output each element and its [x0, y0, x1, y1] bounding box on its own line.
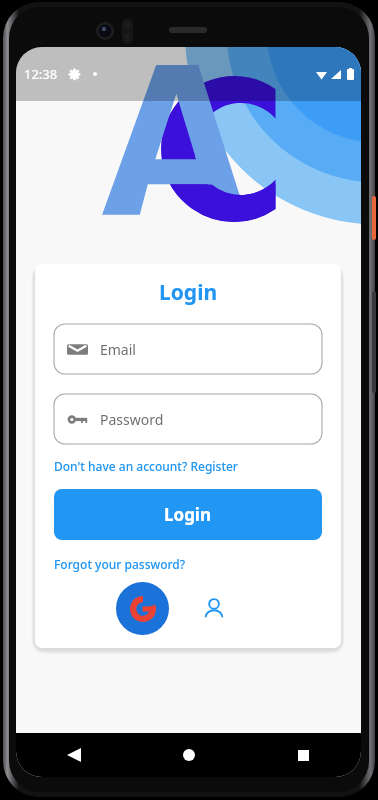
- button[interactable]: Home: [131, 733, 246, 777]
- staticText: Login: [159, 278, 218, 307]
- staticText: Login: [164, 503, 212, 526]
- button[interactable]: Email: [54, 324, 322, 374]
- button[interactable]: Recents: [246, 733, 361, 777]
- button[interactable]: Continue as guest: [197, 592, 231, 626]
- button[interactable]: Password: [54, 394, 322, 444]
- button[interactable]: Back: [16, 733, 131, 777]
- button[interactable]: Login: [54, 489, 322, 540]
- staticText: Email: [100, 340, 136, 359]
- staticText: 12:38: [24, 65, 58, 83]
- button[interactable]: Forgot your password?: [54, 556, 186, 572]
- button[interactable]: Don't have an account? Register: [54, 458, 238, 474]
- staticText: Password: [100, 410, 164, 429]
- button[interactable]: Sign in with Google: [116, 582, 169, 635]
